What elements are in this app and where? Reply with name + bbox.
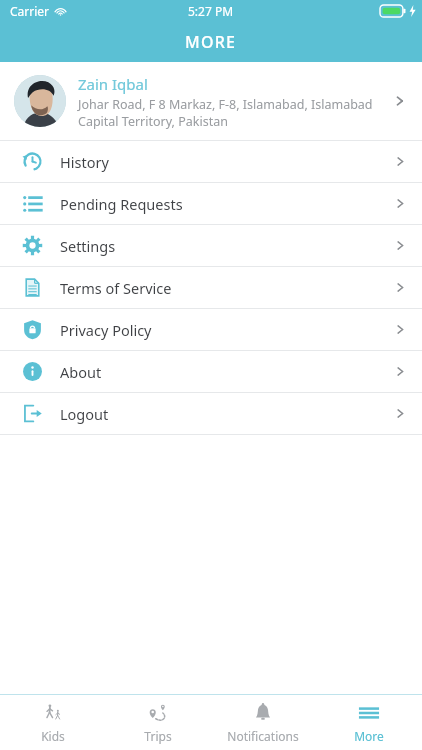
staticText: History [60, 152, 393, 172]
button[interactable]: History [0, 141, 422, 182]
other: Trips [147, 702, 169, 724]
staticText: Terms of Service [60, 278, 393, 298]
staticText: About [60, 362, 393, 382]
staticText: 5:27 PM [188, 3, 234, 19]
button[interactable]: Trips [105, 695, 210, 750]
staticText: Zain Iqbal [78, 74, 148, 94]
staticText: Notifications [227, 728, 299, 744]
button[interactable]: Notifications [210, 695, 316, 750]
staticText: Carrier [10, 3, 50, 19]
other: Kids [42, 702, 64, 724]
staticText: Kids [41, 728, 65, 744]
button[interactable]: Logout [0, 393, 422, 434]
button[interactable]: Terms of Service [0, 267, 422, 308]
other: More [358, 702, 380, 724]
staticText: Johar Road, F 8 Markaz, F-8, Islamabad, … [78, 96, 384, 129]
button[interactable]: Zain Iqbal [0, 62, 422, 140]
staticText: Logout [60, 404, 393, 424]
staticText: Pending Requests [60, 194, 393, 214]
other: Notifications [252, 702, 274, 724]
staticText: Privacy Policy [60, 320, 393, 340]
staticText: Settings [60, 236, 393, 256]
button[interactable]: Privacy Policy [0, 309, 422, 350]
staticText: Trips [144, 728, 172, 744]
button[interactable]: Pending Requests [0, 183, 422, 224]
button[interactable]: About [0, 351, 422, 392]
staticText: More [354, 728, 384, 744]
button[interactable]: Settings [0, 225, 422, 266]
button[interactable]: More [316, 695, 422, 750]
button[interactable]: Kids [0, 695, 105, 750]
staticText: MORE [185, 31, 237, 53]
